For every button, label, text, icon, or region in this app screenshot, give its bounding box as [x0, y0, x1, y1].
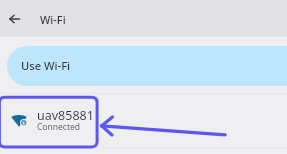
staticText: uav85881: [37, 107, 94, 124]
button[interactable]: uav85881: [0, 94, 287, 147]
staticText: Wi-Fi: [40, 12, 66, 27]
staticText: Use Wi-Fi: [21, 58, 71, 73]
button[interactable]: Back: [2, 7, 26, 31]
staticText: Connected: [37, 121, 80, 133]
button[interactable]: Use Wi-Fi: [7, 46, 287, 86]
